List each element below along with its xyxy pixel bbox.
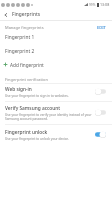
button[interactable]: Add fingerprint <box>0 59 112 70</box>
staticText: Use your fingerprint to verify your iden… <box>5 113 93 121</box>
staticText: Verify Samsung account <box>5 105 61 112</box>
staticText: Add fingerprint <box>10 62 44 68</box>
button[interactable]: Verify Samsung account <box>0 105 112 121</box>
staticText: Web sign-in <box>5 86 32 93</box>
staticText: Fingerprints <box>12 11 41 18</box>
staticText: 99% <box>89 3 96 7</box>
button[interactable]: Fingerprint unlock <box>0 129 112 141</box>
button[interactable]: Fingerprint 2 <box>0 46 112 57</box>
staticText: Use your fingerprint to sign in to websi… <box>5 94 69 98</box>
button[interactable]: Fingerprint 1 <box>0 32 112 43</box>
staticText: Fingerprint unlock <box>5 129 48 136</box>
staticText: EDIT <box>97 25 106 30</box>
button[interactable]: Web sign-in <box>0 86 112 98</box>
staticText: Use your fingerprint to unlock your devi… <box>5 137 69 141</box>
button[interactable]: Back <box>0 9 11 20</box>
button[interactable]: Off <box>95 109 106 116</box>
staticText: Fingerprint verification <box>5 77 48 82</box>
button[interactable]: EDIT <box>94 23 112 32</box>
staticText: Fingerprint 2 <box>5 48 35 55</box>
button[interactable]: Off <box>95 88 106 95</box>
staticText: 13:08 <box>100 2 110 7</box>
button[interactable]: On <box>95 131 106 138</box>
staticText: Fingerprint 1 <box>5 34 35 41</box>
staticText: Manage fingerprints <box>5 25 44 30</box>
